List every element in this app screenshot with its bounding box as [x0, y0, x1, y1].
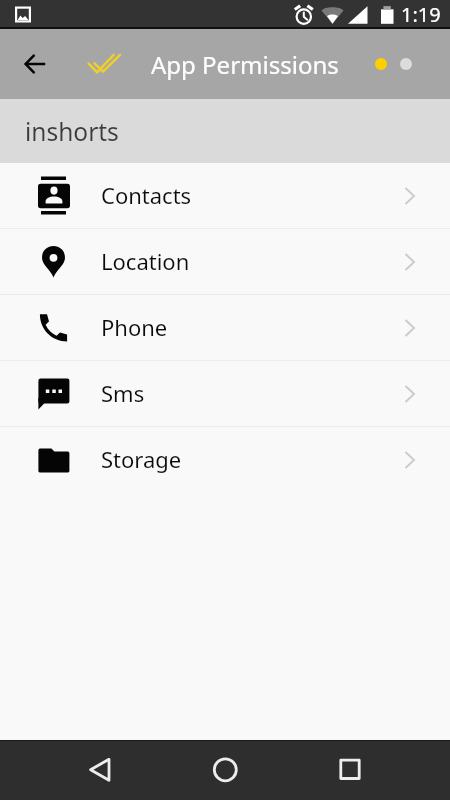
- button[interactable]: Sms: [0, 361, 450, 426]
- staticText: App Permissions: [151, 48, 339, 81]
- button[interactable]: Storage: [0, 427, 450, 493]
- staticText: Storage: [101, 444, 182, 474]
- staticText: 1:19: [401, 1, 441, 28]
- button[interactable]: Allow all: [84, 43, 126, 85]
- staticText: Phone: [101, 312, 168, 342]
- button[interactable]: Phone: [0, 295, 450, 360]
- button[interactable]: Location: [0, 229, 450, 294]
- button[interactable]: Back: [12, 41, 58, 87]
- staticText: Location: [101, 246, 190, 276]
- button[interactable]: Recent apps: [320, 740, 380, 800]
- staticText: Sms: [101, 378, 145, 408]
- button[interactable]: Contacts: [0, 163, 450, 228]
- staticText: Contacts: [101, 180, 192, 210]
- staticText: inshorts: [25, 115, 119, 148]
- button[interactable]: Back: [70, 740, 130, 800]
- button[interactable]: Home: [195, 740, 255, 800]
